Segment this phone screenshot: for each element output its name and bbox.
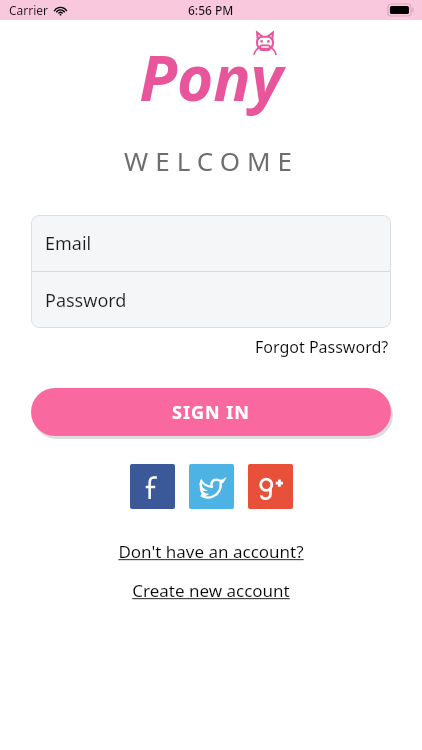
button[interactable]: Create new account	[126, 576, 296, 605]
button[interactable]: Forgot Password?	[253, 334, 391, 360]
staticText: Forgot Password?	[255, 336, 389, 358]
button[interactable]: Sign in with Facebook	[130, 464, 175, 509]
staticText: Don't have an account?	[118, 540, 304, 563]
staticText: WELCOME	[124, 143, 299, 178]
staticText: 6:56 PM	[188, 2, 234, 18]
button[interactable]: Password	[31, 272, 391, 328]
button[interactable]: Sign in with Google Plus	[248, 464, 293, 509]
staticText: Email	[45, 231, 92, 256]
button[interactable]: Email	[31, 215, 391, 271]
staticText: Pony	[139, 35, 283, 119]
button[interactable]: Don't have an account?	[112, 537, 310, 566]
button[interactable]: SIGN IN	[31, 388, 391, 436]
button[interactable]: Sign in with Twitter	[189, 464, 234, 509]
staticText: Create new account	[132, 579, 290, 602]
staticText: Password	[45, 288, 127, 313]
staticText: Carrier	[9, 2, 49, 18]
staticText: SIGN IN	[172, 400, 250, 425]
